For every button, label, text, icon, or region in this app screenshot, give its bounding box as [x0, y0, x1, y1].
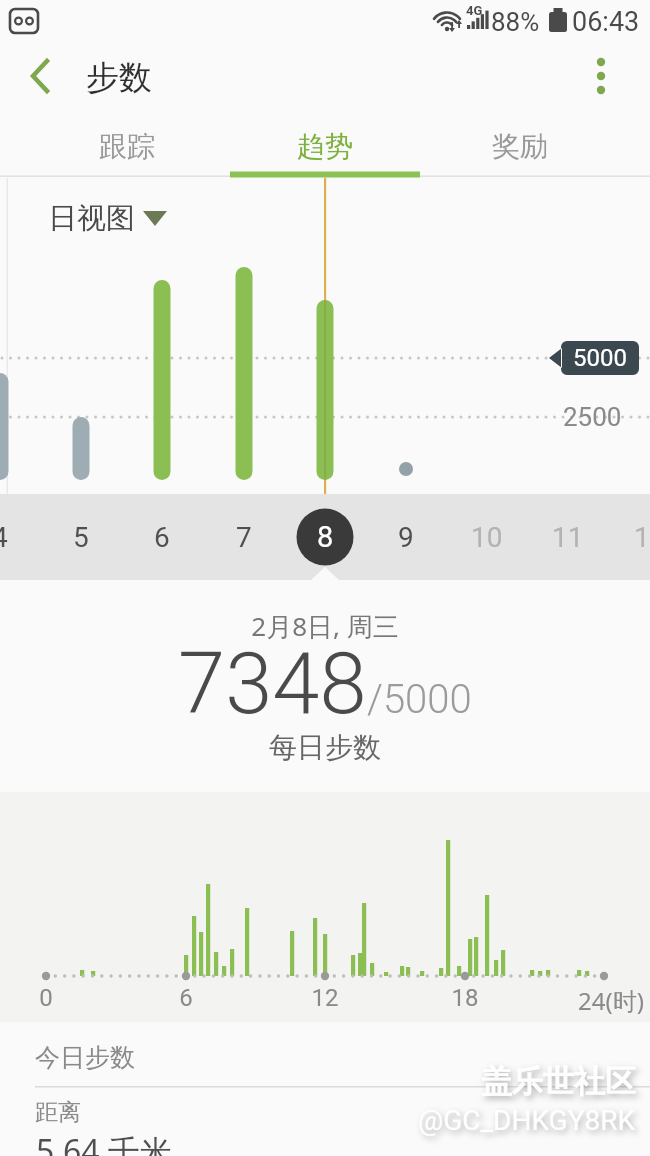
staticText: 4G [466, 3, 483, 18]
button[interactable]: 趋势 [230, 118, 420, 175]
staticText: 5.64 千米 [36, 1129, 172, 1156]
button[interactable]: 跟踪 [32, 118, 222, 175]
staticText: /5000 [367, 676, 472, 723]
staticText: 10 [471, 521, 503, 554]
staticText: 12 [634, 521, 650, 554]
staticText: 7348 [178, 634, 367, 734]
staticText: 11 [552, 521, 584, 554]
staticText: 奖励 [492, 129, 548, 164]
staticText: 24(时) [578, 984, 644, 1017]
staticText: 06:43 [572, 6, 640, 38]
staticText: 5000 [561, 344, 639, 372]
staticText: 6 [154, 521, 170, 554]
button[interactable] [577, 52, 625, 100]
staticText: 盖乐世社区 [481, 1062, 636, 1101]
button[interactable]: 奖励 [425, 118, 615, 175]
staticText: 12 [305, 984, 345, 1012]
button[interactable]: 8 [295, 507, 355, 567]
staticText: @GC_DHKGY8RK [418, 1104, 636, 1137]
staticText: 7 [236, 521, 252, 554]
staticText: 4 [0, 521, 8, 554]
button[interactable] [20, 52, 68, 100]
staticText: 步数 [86, 57, 152, 99]
staticText: 跟踪 [99, 129, 155, 164]
staticText: 2月8日, 周三 [0, 608, 650, 644]
staticText: 日视图 [48, 200, 135, 237]
staticText: 每日步数 [0, 730, 650, 765]
staticText: 0 [26, 984, 66, 1012]
staticText: 18 [445, 984, 485, 1012]
staticText: 6 [166, 984, 206, 1012]
staticText: 趋势 [297, 129, 353, 164]
staticText: 2500 [563, 402, 622, 432]
staticText: 88% [491, 7, 540, 37]
staticText: 今日步数 [35, 1042, 135, 1073]
staticText: 9 [398, 521, 414, 554]
staticText: 距离 [35, 1098, 81, 1127]
button[interactable] [40, 196, 180, 240]
staticText: 8 [317, 520, 334, 554]
staticText: 5 [73, 521, 89, 554]
